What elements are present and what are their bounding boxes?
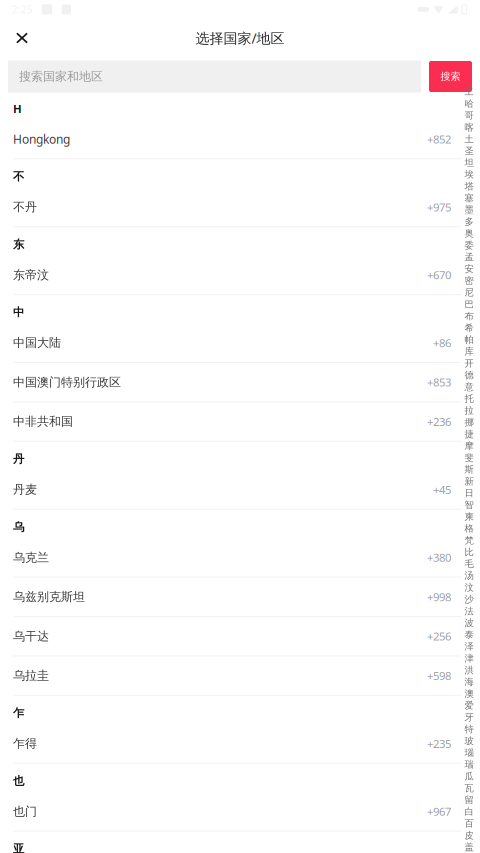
staticText: 土 <box>464 133 473 145</box>
staticText: 乌 <box>13 520 24 534</box>
staticText: 海 <box>464 676 473 688</box>
staticText: 工 <box>464 86 473 98</box>
button[interactable]: 东帝汶 <box>0 256 461 295</box>
staticText: 牙 <box>464 711 473 723</box>
staticText: +86 <box>433 335 451 350</box>
staticText: 日 <box>464 487 473 499</box>
staticText: 东 <box>13 237 24 252</box>
staticText: 津 <box>464 652 473 664</box>
staticText: 孟 <box>464 251 473 263</box>
staticText: +670 <box>427 267 451 283</box>
staticText: 不 <box>13 169 24 184</box>
staticText: 中国大陆 <box>13 335 61 350</box>
staticText: 瓜 <box>464 770 473 782</box>
button[interactable]: 中非共和国 <box>0 402 461 442</box>
staticText: 意 <box>464 381 473 393</box>
staticText: 乍得 <box>13 736 37 751</box>
staticText: 丹 <box>13 452 24 466</box>
staticText: 汤 <box>464 570 473 582</box>
staticText: 中 <box>13 305 24 319</box>
staticText: 坦 <box>464 157 473 169</box>
staticText: 中国澳门特别行政区 <box>13 375 121 390</box>
staticText: 百 <box>464 818 473 829</box>
staticText: +380 <box>427 550 451 565</box>
staticText: 哥 <box>464 110 473 121</box>
staticText: 玻 <box>464 735 473 747</box>
staticText: +852 <box>427 131 451 147</box>
button[interactable]: 也门 <box>0 792 461 832</box>
staticText: 多 <box>464 216 473 228</box>
staticText: 选择国家/地区 <box>195 28 284 48</box>
staticText: 汶 <box>464 582 473 593</box>
staticText: 乌克兰 <box>13 550 49 565</box>
staticText: 巴 <box>464 298 473 310</box>
staticText: 梵 <box>464 534 473 546</box>
staticText: 留 <box>464 794 473 806</box>
staticText: 托 <box>464 393 473 405</box>
staticText: 拉 <box>464 405 473 416</box>
staticText: 爱 <box>464 700 473 711</box>
staticText: 斐 <box>464 452 473 464</box>
staticText: 瑞 <box>464 759 473 770</box>
staticText: 希 <box>464 322 473 334</box>
staticText: +45 <box>433 482 451 497</box>
staticText: 沙 <box>464 593 473 605</box>
button[interactable]: 中国澳门特别行政区 <box>0 363 461 402</box>
staticText: +998 <box>427 589 451 604</box>
staticText: 波 <box>464 617 473 629</box>
staticText: 特 <box>464 723 473 735</box>
staticText: 帕 <box>464 334 473 346</box>
button[interactable]: 乍得 <box>0 724 461 764</box>
staticText: 德 <box>464 369 473 381</box>
staticText: 比 <box>464 546 473 558</box>
staticText: 圣 <box>464 145 473 157</box>
staticText: 开 <box>464 357 473 369</box>
staticText: 斯 <box>464 464 473 475</box>
staticText: 塞 <box>464 192 473 204</box>
staticText: 白 <box>464 806 473 818</box>
staticText: 2:25 <box>11 2 32 17</box>
staticText: 盖 <box>464 841 473 853</box>
staticText: 哈 <box>464 98 473 110</box>
staticText: 也 <box>13 774 24 788</box>
staticText: 密 <box>464 275 473 287</box>
button[interactable]: 中国大陆 <box>0 324 461 363</box>
staticText: +236 <box>427 414 451 429</box>
staticText: 布 <box>464 310 473 322</box>
button[interactable]: Close <box>6 22 38 54</box>
staticText: 新 <box>464 475 473 487</box>
staticText: 亚 <box>13 842 24 853</box>
staticText: 瑙 <box>464 747 473 759</box>
button[interactable]: 乌拉圭 <box>0 656 461 696</box>
staticText: 乍 <box>13 706 24 720</box>
staticText: 不丹 <box>13 199 37 214</box>
button[interactable]: 乌兹别克斯坦 <box>0 578 461 617</box>
staticText: +975 <box>427 199 451 215</box>
button[interactable]: 搜索 <box>429 61 472 92</box>
staticText: 澳 <box>464 688 473 700</box>
staticText: 挪 <box>464 416 473 428</box>
staticText: +235 <box>427 736 451 751</box>
staticText: 塔 <box>464 180 473 192</box>
staticText: 泰 <box>464 629 473 641</box>
staticText: 泽 <box>464 641 473 652</box>
staticText: 皮 <box>464 829 473 841</box>
staticText: +598 <box>427 668 451 683</box>
staticText: 摩 <box>464 440 473 452</box>
staticText: 安 <box>464 263 473 275</box>
staticText: 库 <box>464 346 473 357</box>
staticText: 法 <box>464 605 473 617</box>
button[interactable]: 乌克兰 <box>0 538 461 578</box>
button[interactable]: Section index <box>459 86 478 853</box>
staticText: 搜索国家和地区 <box>19 69 103 84</box>
button[interactable]: 丹麦 <box>0 470 461 510</box>
button[interactable]: 不丹 <box>0 188 461 227</box>
staticText: 格 <box>464 523 473 534</box>
button[interactable]: Hongkong <box>0 120 461 159</box>
button[interactable]: 乌干达 <box>0 617 461 656</box>
staticText: 奥 <box>464 228 473 239</box>
staticText: 毛 <box>464 558 473 570</box>
staticText: 捷 <box>464 428 473 440</box>
staticText: 洪 <box>464 664 473 676</box>
staticText: 墨 <box>464 204 473 216</box>
